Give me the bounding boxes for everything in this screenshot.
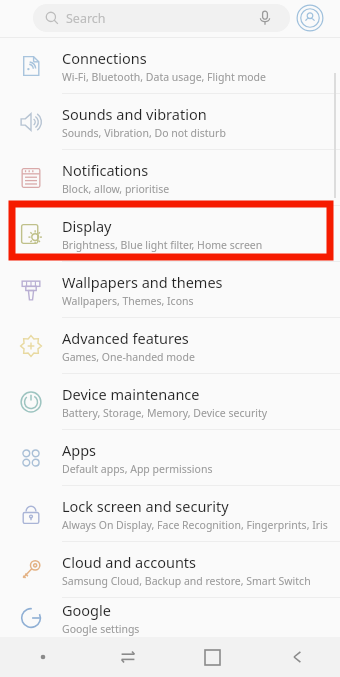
button[interactable]: Recents bbox=[85, 637, 170, 677]
button[interactable]: Menu dot bbox=[0, 637, 85, 677]
staticText: Search bbox=[66, 10, 106, 27]
button[interactable]: Cloud and accounts bbox=[0, 542, 340, 598]
staticText: Default apps, App permissions bbox=[62, 462, 213, 476]
staticText: Lock screen and security bbox=[62, 496, 229, 516]
button[interactable]: Profile bbox=[296, 4, 324, 32]
button[interactable]: Apps bbox=[0, 430, 340, 486]
staticText: Google settings bbox=[62, 622, 140, 636]
staticText: Device maintenance bbox=[62, 384, 200, 404]
button[interactable]: Back bbox=[255, 637, 340, 677]
button[interactable]: Google bbox=[0, 598, 340, 637]
staticText: Connections bbox=[62, 48, 147, 68]
staticText: Block, allow, prioritise bbox=[62, 182, 170, 196]
button[interactable]: Device maintenance bbox=[0, 374, 340, 430]
staticText: Wi-Fi, Bluetooth, Data usage, Flight mod… bbox=[62, 70, 267, 84]
button[interactable]: Advanced features bbox=[0, 318, 340, 374]
button[interactable]: Wallpapers and themes bbox=[0, 262, 340, 318]
staticText: Games, One-handed mode bbox=[62, 350, 195, 364]
button[interactable]: Search bbox=[33, 4, 290, 32]
staticText: Google bbox=[62, 600, 111, 620]
staticText: Brightness, Blue light filter, Home scre… bbox=[62, 238, 263, 252]
staticText: Sounds, Vibration, Do not disturb bbox=[62, 126, 226, 140]
staticText: Wallpapers, Themes, Icons bbox=[62, 294, 194, 308]
staticText: Always On Display, Face Recognition, Fin… bbox=[62, 518, 328, 532]
staticText: Battery, Storage, Memory, Device securit… bbox=[62, 406, 268, 420]
staticText: Advanced features bbox=[62, 328, 189, 348]
staticText: Sounds and vibration bbox=[62, 104, 207, 124]
staticText: Samsung Cloud, Backup and restore, Smart… bbox=[62, 574, 311, 588]
button[interactable]: Sounds and vibration bbox=[0, 94, 340, 150]
button[interactable]: Connections bbox=[0, 38, 340, 94]
staticText: Wallpapers and themes bbox=[62, 272, 223, 292]
staticText: Display bbox=[62, 216, 112, 236]
button[interactable]: Notifications bbox=[0, 150, 340, 206]
staticText: Notifications bbox=[62, 160, 149, 180]
button[interactable]: Voice search bbox=[255, 8, 275, 28]
staticText: Cloud and accounts bbox=[62, 552, 197, 572]
button[interactable]: Home bbox=[170, 637, 255, 677]
button[interactable]: Display bbox=[0, 206, 340, 262]
staticText: Apps bbox=[62, 440, 97, 460]
button[interactable]: Lock screen and security bbox=[0, 486, 340, 542]
